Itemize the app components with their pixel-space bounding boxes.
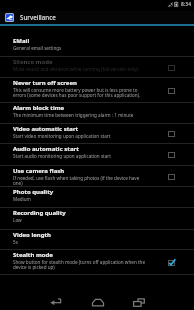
staticText: Mute sound and vibration while running (… <box>13 66 138 72</box>
staticText: If needed, use flash when taking photos … <box>13 175 146 187</box>
button[interactable]: Photo quality <box>0 187 194 208</box>
button[interactable]: Audio automatic start <box>0 144 194 166</box>
staticText: 8:34 <box>181 1 191 8</box>
button[interactable]: Recent apps <box>118 285 159 310</box>
staticText: Video automatic start <box>13 125 79 133</box>
staticText: Audio automatic start <box>13 145 79 153</box>
staticText: Medium <box>13 196 31 202</box>
button[interactable]: Silence mode <box>0 57 194 78</box>
button[interactable]: Toggle <box>148 166 194 187</box>
button[interactable]: Toggle <box>148 78 194 103</box>
staticText: EMail <box>13 37 30 45</box>
button[interactable]: Toggle <box>148 144 194 166</box>
button[interactable]: Recording quality <box>0 208 194 230</box>
staticText: Photo quality <box>13 188 54 196</box>
staticText: Surveillance <box>20 13 56 21</box>
staticText: Recording quality <box>13 209 66 217</box>
staticText: This will consume more battery power but… <box>13 87 146 99</box>
button[interactable]: Toggle <box>148 250 194 275</box>
button[interactable]: Back <box>36 285 77 310</box>
staticText: Start video monitoring upon application … <box>13 133 111 139</box>
button[interactable]: Video length <box>0 230 194 250</box>
button[interactable]: Never turn off screen <box>0 78 194 103</box>
staticText: Never turn off screen <box>13 79 77 87</box>
staticText: Alarm block time <box>13 104 65 112</box>
button[interactable]: Toggle <box>148 124 194 144</box>
button[interactable]: Toggle <box>148 57 194 78</box>
button[interactable]: Use camera flash <box>0 166 194 187</box>
staticText: Low <box>13 217 22 223</box>
staticText: Video length <box>13 231 51 239</box>
button[interactable]: Video automatic start <box>0 124 194 144</box>
staticText: The minimum time between triggering alar… <box>13 112 134 118</box>
button[interactable]: Surveillance <box>0 11 194 26</box>
staticText: Use camera flash <box>13 167 65 175</box>
button[interactable]: EMail <box>0 36 194 57</box>
staticText: Silence mode <box>13 58 53 66</box>
button[interactable]: Home <box>77 285 118 310</box>
staticText: Start audio monitoring upon application … <box>13 153 111 159</box>
staticText: 5s <box>13 239 18 245</box>
button[interactable]: Alarm block time <box>0 103 194 124</box>
button[interactable]: Stealth mode <box>0 250 194 275</box>
staticText: Stealth mode <box>13 251 53 259</box>
staticText: Show button for stealth mode (turns off … <box>13 259 146 271</box>
staticText: General email settings <box>13 45 62 51</box>
